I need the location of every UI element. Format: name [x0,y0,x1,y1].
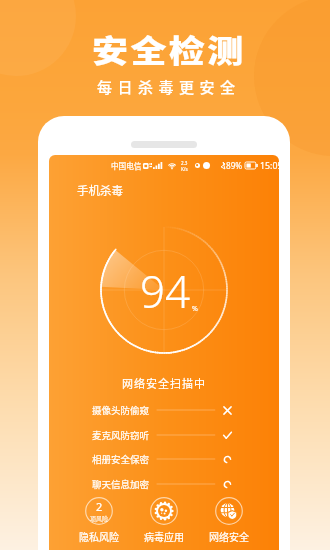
button[interactable]: 网络安全 [196,497,262,543]
staticText: 相册安全保密 [92,452,150,466]
button[interactable]: 聊天信息加密 [85,476,243,492]
staticText: 网络安全扫描中 [49,375,279,391]
staticText: 2.3 [181,160,188,166]
staticText: 94 [140,261,191,321]
staticText: 每日杀毒更安全 [97,76,241,98]
staticText: 89% [226,160,243,171]
staticText: 中国电信 [111,160,142,171]
staticText: 麦克风防窃听 [92,428,150,442]
staticText: 聊天信息加密 [92,477,150,491]
button[interactable]: 病毒应用 [131,497,197,543]
button[interactable]: 相册安全保密 [85,451,243,467]
button[interactable]: Passed [217,425,237,445]
staticText: 安全检测 [92,26,246,70]
button[interactable]: Scanning [217,449,237,469]
staticText: 网络安全 [209,529,249,543]
staticText: 隐私风险 [79,529,119,543]
staticText: % [192,304,198,314]
button[interactable]: 麦克风防窃听 [85,427,243,443]
staticText: K/s [181,166,188,172]
staticText: 病毒应用 [144,529,184,543]
staticText: 15:05 [260,160,279,172]
staticText: 手机杀毒 [77,182,123,199]
staticText: 项风险 [90,514,109,523]
staticText: 摄像头防偷窥 [92,403,150,417]
staticText: 2 [96,499,103,514]
button[interactable]: Scanning [217,474,237,494]
button[interactable]: 摄像头防偷窥 [85,402,243,418]
button[interactable]: 2 [66,497,132,543]
button[interactable]: Failed [217,400,237,420]
